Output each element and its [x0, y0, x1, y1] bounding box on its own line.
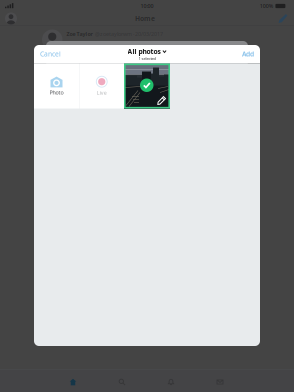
staticText: Home: [135, 14, 155, 23]
staticText: Photo: [49, 89, 63, 96]
button[interactable]: Photo: [34, 63, 79, 108]
button[interactable]: Selected photo: [124, 63, 170, 108]
staticText: 10:00: [140, 2, 153, 10]
button[interactable]: All photos: [107, 45, 187, 63]
button[interactable]: Cancel: [34, 45, 84, 63]
button[interactable]: Live: [79, 63, 124, 108]
staticText: Live: [97, 89, 107, 96]
staticText: 100%: [260, 2, 274, 10]
button[interactable]: Profile: [0, 12, 22, 25]
button[interactable]: Home: [48, 370, 97, 392]
staticText: Zoe Taylor: [66, 30, 92, 38]
staticText: Cancel: [40, 50, 61, 58]
staticText: All photos: [127, 47, 160, 56]
staticText: Add: [242, 50, 254, 58]
staticText: 1 selected: [138, 56, 155, 61]
button[interactable]: Add: [224, 45, 260, 63]
button[interactable]: Compose: [272, 12, 294, 25]
